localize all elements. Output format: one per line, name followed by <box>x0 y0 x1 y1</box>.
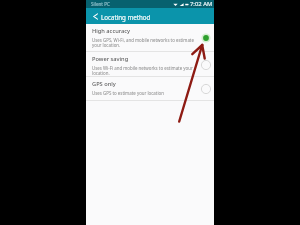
staticText: 7:02 AM <box>190 0 213 8</box>
staticText: Silent PC <box>91 1 110 7</box>
staticText: Uses Wi-Fi and mobile networks to estima… <box>92 65 193 76</box>
staticText: Uses GPS, Wi-Fi, and mobile networks to … <box>92 37 194 48</box>
button[interactable]: Power saving <box>86 52 214 76</box>
button[interactable]: GPS only <box>86 77 214 100</box>
staticText: High accuracy <box>92 27 131 35</box>
button[interactable]: Back <box>86 8 214 24</box>
staticText: Uses GPS to estimate your location <box>92 90 164 96</box>
button[interactable]: High accuracy <box>86 24 214 51</box>
staticText: Power saving <box>92 55 129 63</box>
other: Back <box>92 13 99 20</box>
staticText: GPS only <box>92 80 116 88</box>
staticText: Locating method <box>101 13 151 21</box>
